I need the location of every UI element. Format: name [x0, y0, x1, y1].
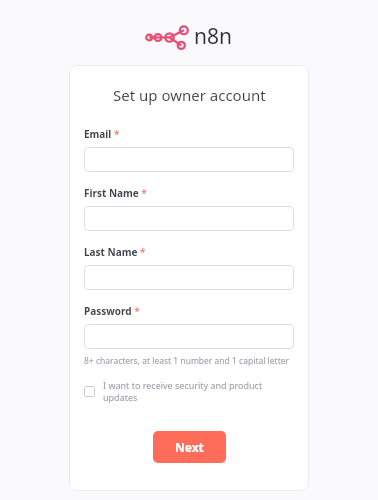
button[interactable]: Text input field [84, 147, 294, 172]
staticText: Password * [84, 304, 140, 318]
staticText: I want to receive security and product u… [103, 379, 294, 403]
button[interactable]: I want to receive security and product u… [84, 377, 294, 405]
staticText: Next [175, 439, 204, 455]
button[interactable]: Text input field [84, 324, 294, 349]
staticText: First Name * [84, 186, 147, 200]
button[interactable]: Next [153, 431, 226, 463]
staticText: Set up owner account [113, 85, 266, 105]
button[interactable]: Text input field [84, 265, 294, 290]
button[interactable]: Text input field [84, 206, 294, 231]
staticText: 8+ characters, at least 1 number and 1 c… [84, 355, 290, 367]
staticText: Email * [84, 127, 120, 141]
staticText: n8n [194, 22, 232, 51]
staticText: Last Name * [84, 245, 146, 259]
